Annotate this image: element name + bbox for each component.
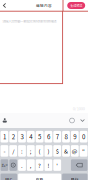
button[interactable]: Delete: [71, 159, 87, 171]
button[interactable]: ': [53, 159, 61, 171]
staticText: :: [21, 147, 23, 155]
button[interactable]: ): [44, 145, 52, 157]
staticText: 4: [29, 132, 32, 141]
button[interactable]: /: [9, 145, 17, 157]
button[interactable]: 6: [44, 131, 52, 142]
staticText: 6: [47, 132, 50, 141]
staticText: 请输入您想要一套图文或视频的创意描述: [2, 18, 56, 23]
button[interactable]: 1: [0, 131, 8, 142]
staticText: ): [47, 147, 49, 155]
staticText: 生成预览: [70, 3, 82, 8]
staticText: (: [39, 147, 41, 155]
staticText: $: [56, 147, 59, 155]
staticText: ?: [38, 161, 41, 169]
button[interactable]: 0: [80, 131, 87, 142]
staticText: ;: [30, 147, 32, 155]
staticText: 8: [64, 132, 67, 141]
button[interactable]: $: [53, 145, 61, 157]
button[interactable]: (: [36, 145, 43, 157]
button[interactable]: 换行: [62, 173, 87, 180]
staticText: 7: [56, 132, 59, 141]
staticText: 编辑内容: [36, 3, 52, 8]
staticText: ': [56, 161, 58, 169]
button[interactable]: 5: [36, 131, 43, 142]
button[interactable]: 7: [53, 131, 61, 142]
button[interactable]: 生成预览: [67, 2, 85, 9]
button[interactable]: #+=: [0, 159, 8, 171]
staticText: ABC: [5, 176, 13, 180]
button[interactable]: 2: [9, 131, 17, 142]
button[interactable]: ?: [36, 159, 43, 171]
button[interactable]: 4: [27, 131, 35, 142]
staticText: @: [72, 147, 78, 155]
button[interactable]: Input method: [0, 113, 9, 128]
button[interactable]: Switch keyboard: [9, 159, 17, 171]
staticText: 5: [38, 132, 41, 141]
staticText: #+=: [1, 162, 7, 168]
button[interactable]: &: [62, 145, 70, 157]
button[interactable]: :: [18, 145, 26, 157]
button[interactable]: -: [0, 145, 8, 157]
staticText: ,: [30, 161, 32, 169]
staticText: 9: [73, 132, 76, 141]
staticText: !: [47, 161, 49, 169]
button[interactable]: .: [18, 159, 26, 171]
staticText: .: [21, 161, 23, 169]
button[interactable]: !: [44, 159, 52, 171]
staticText: 换行: [71, 177, 79, 180]
staticText: 空格: [36, 177, 44, 180]
button[interactable]: ;: [27, 145, 35, 157]
button[interactable]: ABC: [0, 173, 17, 180]
button[interactable]: 3: [18, 131, 26, 142]
button[interactable]: Settings: [67, 113, 77, 128]
button[interactable]: 空格: [18, 173, 61, 180]
staticText: -: [3, 147, 5, 155]
button[interactable]: ,: [27, 159, 35, 171]
staticText: 0: [82, 132, 85, 141]
staticText: 0/1000: [73, 106, 85, 111]
staticText: &: [64, 147, 68, 155]
staticText: 3: [20, 132, 23, 141]
button[interactable]: @: [71, 145, 79, 157]
button[interactable]: Back: [0, 0, 9, 11]
button[interactable]: ": [80, 145, 87, 157]
button[interactable]: 9: [71, 131, 79, 142]
staticText: 1: [3, 132, 6, 141]
button[interactable]: Hide keyboard: [77, 113, 88, 128]
button[interactable]: 8: [62, 131, 70, 142]
staticText: /: [12, 147, 14, 155]
staticText: 2: [12, 132, 15, 141]
staticText: ": [82, 147, 85, 155]
